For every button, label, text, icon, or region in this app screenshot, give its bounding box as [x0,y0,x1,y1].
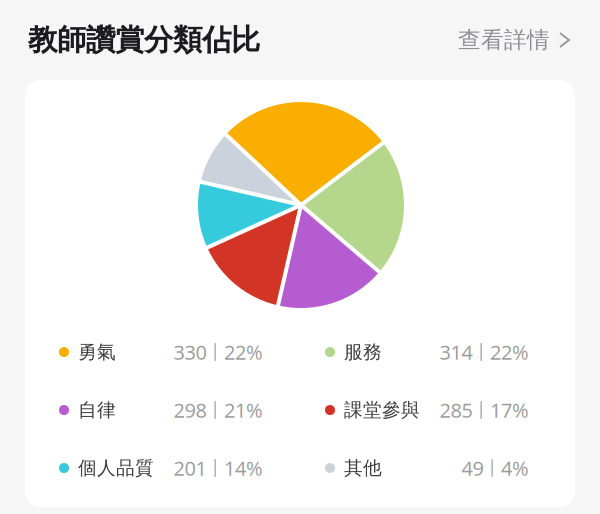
staticText: 201 [173,455,206,481]
staticText: 教師讚賞分類佔比 [28,22,260,58]
staticText: 其他 [344,457,382,479]
staticText: 21% [224,397,263,423]
staticText: 自律 [78,399,116,421]
staticText: 服務 [344,341,382,363]
staticText: 14% [224,455,263,481]
button[interactable]: 查看詳情 [458,26,570,54]
staticText: 課堂參與 [344,399,420,421]
staticText: 勇氣 [78,341,116,363]
staticText: 314 [439,339,472,365]
staticText: 285 [439,397,472,423]
staticText: 330 [173,339,206,365]
staticText: 個人品質 [78,457,154,479]
staticText: 22% [224,339,263,365]
staticText: 49 [461,455,483,481]
staticText: 298 [173,397,206,423]
staticText: 4% [501,455,529,481]
staticText: 查看詳情 [458,26,550,54]
staticText: 17% [490,397,529,423]
staticText: 22% [490,339,529,365]
